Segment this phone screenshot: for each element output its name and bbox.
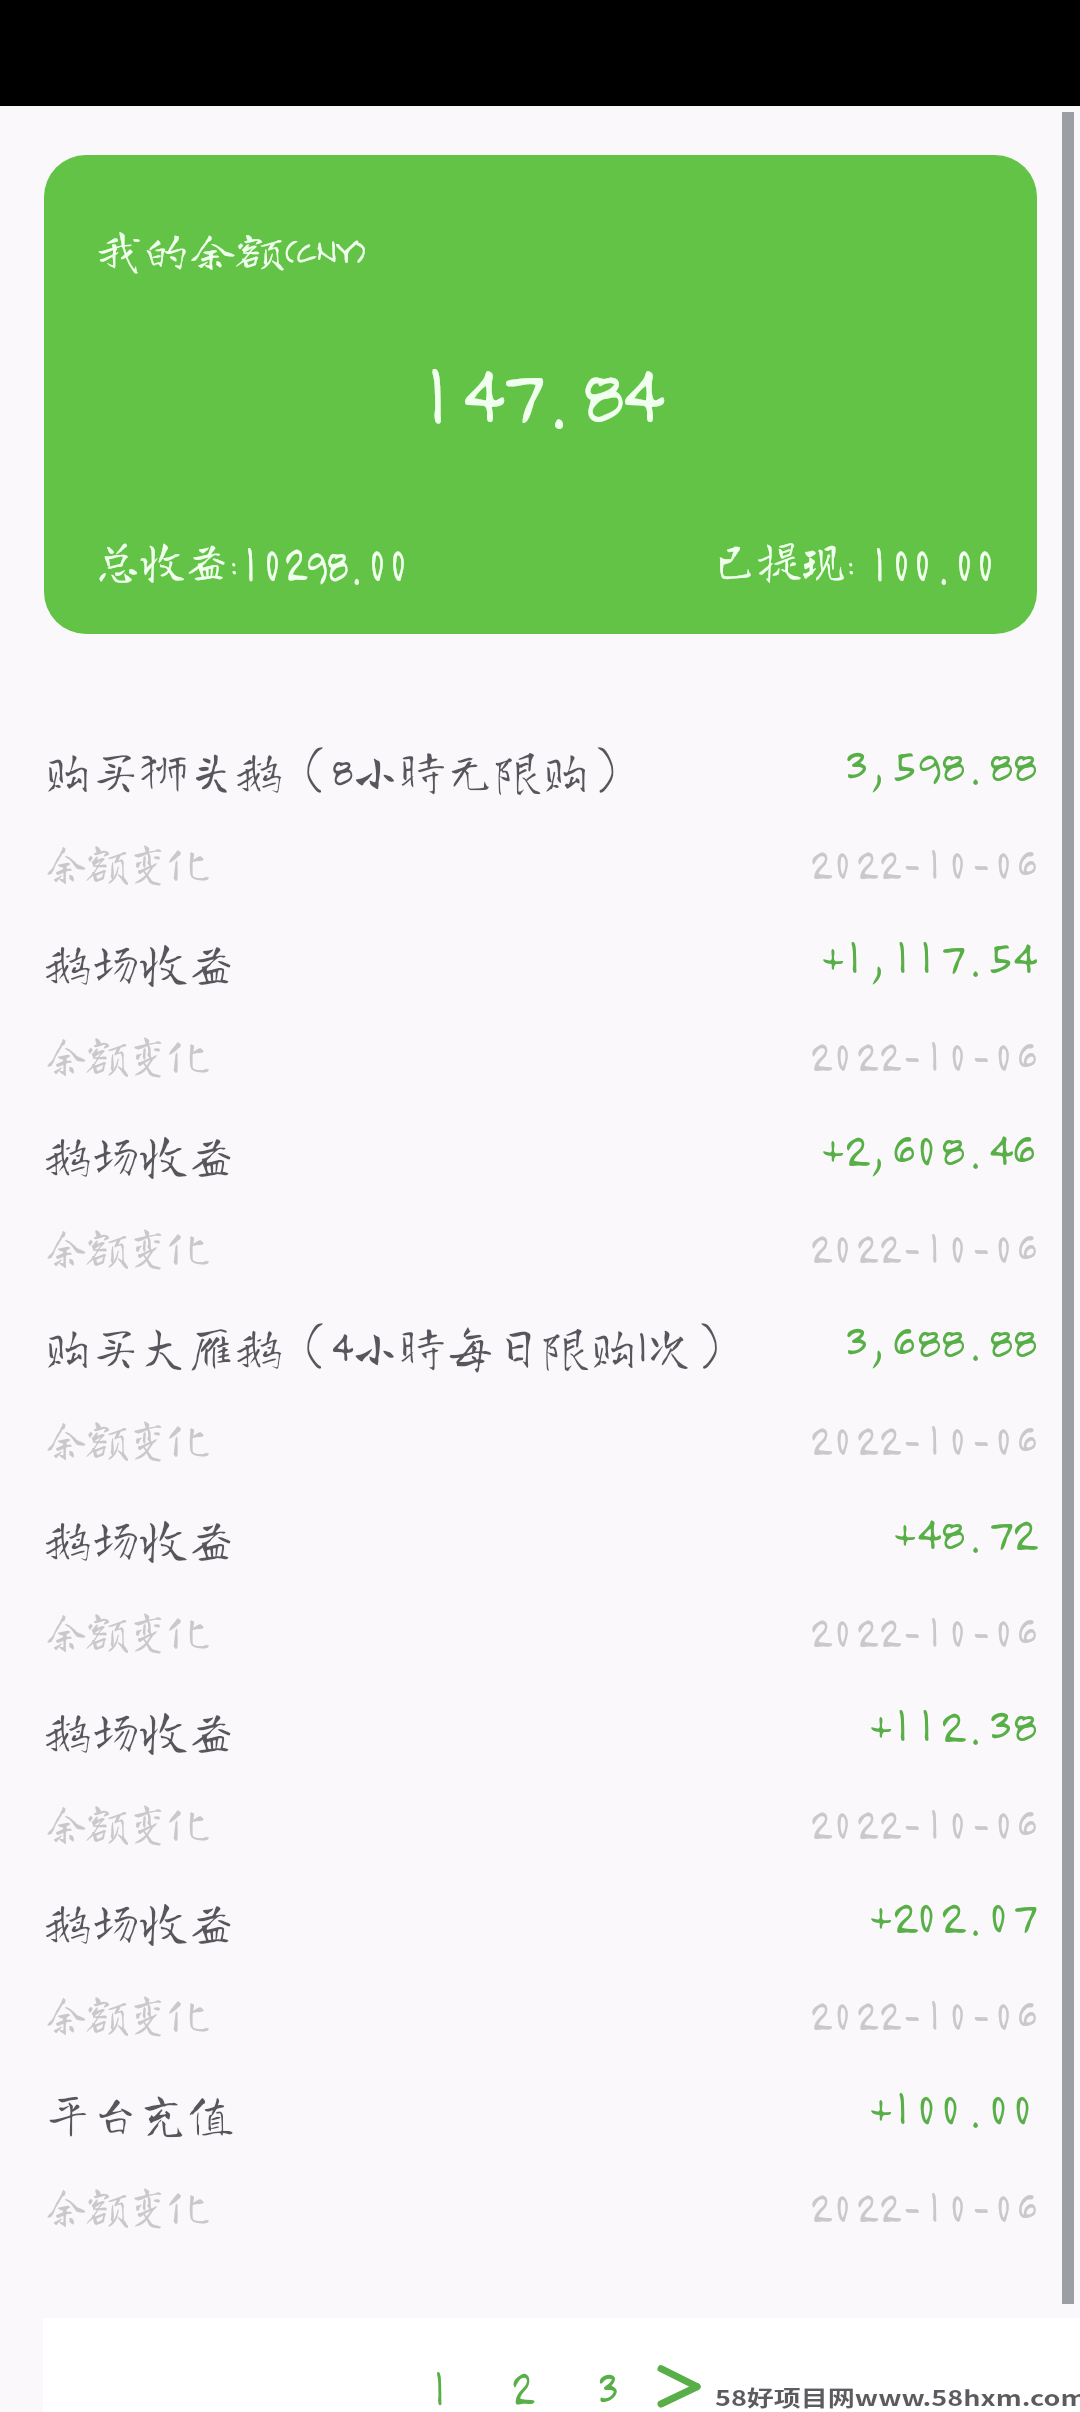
staticText: 0 xyxy=(996,836,1009,889)
staticText: 0 xyxy=(950,1796,963,1849)
staticText: 0 xyxy=(990,1887,1004,1945)
staticText: 8 xyxy=(581,340,609,443)
staticText: 0 xyxy=(914,531,927,593)
staticText: 4 xyxy=(1012,928,1030,986)
button[interactable]: 1 xyxy=(404,2352,472,2412)
staticText: 2 xyxy=(879,1604,896,1657)
staticText: - xyxy=(903,1987,919,2040)
staticText: 鹅场收益 xyxy=(44,934,235,988)
button[interactable]: 鹅场收益 xyxy=(0,1454,1080,1646)
staticText: 余额变化 xyxy=(46,1606,210,1654)
staticText: 2 xyxy=(511,2355,533,2412)
staticText: 2 xyxy=(810,836,827,889)
staticText: 2 xyxy=(879,1412,896,1465)
staticText: 0 xyxy=(950,836,963,889)
staticText: . xyxy=(970,2079,977,2137)
staticText: - xyxy=(972,1987,988,2040)
staticText: - xyxy=(972,1604,988,1657)
staticText: 8 xyxy=(1012,1312,1030,1370)
staticText: 2 xyxy=(940,1887,958,1945)
staticText: 2 xyxy=(879,1220,896,1273)
staticText: 1 xyxy=(929,1028,937,1081)
staticText: - xyxy=(972,2179,988,2232)
staticText: . xyxy=(970,736,977,794)
staticText: 1 xyxy=(929,1987,937,2040)
staticText: . xyxy=(970,1504,977,1562)
staticText: - xyxy=(903,1796,919,1849)
staticText: 3 xyxy=(844,1312,862,1370)
button[interactable]: 鹅场收益 xyxy=(0,1070,1080,1262)
staticText: 余额变化 xyxy=(46,1222,210,1270)
staticText: 6 xyxy=(1017,1028,1034,1081)
staticText: 2 xyxy=(879,2179,896,2232)
staticText: 0 xyxy=(835,1796,848,1849)
button[interactable]: 购买大雁鹅（4小时每日限购1次） xyxy=(0,1262,1080,1454)
staticText: 0 xyxy=(950,1987,963,2040)
staticText: 鹅场收益 xyxy=(44,1893,235,1947)
staticText: 1 xyxy=(929,1412,937,1465)
staticText: + xyxy=(868,1887,886,1945)
staticText: 0 xyxy=(835,2179,848,2232)
staticText: - xyxy=(972,836,988,889)
staticText: 8 xyxy=(916,1312,934,1370)
staticText: 7 xyxy=(501,340,529,443)
button[interactable]: Next page xyxy=(645,2350,713,2412)
staticText: 余额变化 xyxy=(46,1989,210,2037)
staticText: 1 xyxy=(897,1696,905,1754)
button[interactable]: 2 xyxy=(488,2352,556,2412)
staticText: 6 xyxy=(892,1312,910,1370)
staticText: 8 xyxy=(1012,736,1030,794)
staticText: 7 xyxy=(1012,1887,1030,1945)
staticText: 购买大雁鹅（4小时每日限购1次） xyxy=(44,1318,741,1372)
staticText: + xyxy=(892,1504,910,1562)
staticText: 8 xyxy=(940,1504,958,1562)
staticText: 6 xyxy=(1012,1120,1030,1178)
button[interactable]: 鹅场收益 xyxy=(0,878,1080,1070)
staticText: 8 xyxy=(988,1312,1006,1370)
staticText: 余额变化 xyxy=(46,1414,210,1462)
staticText: - xyxy=(903,1412,919,1465)
button[interactable]: 3 xyxy=(572,2352,640,2412)
staticText: 2 xyxy=(1012,1504,1030,1562)
button[interactable]: 我的余额(CNY) xyxy=(44,155,1037,634)
staticText: 2 xyxy=(856,1220,873,1273)
staticText: 0 xyxy=(390,531,403,593)
staticText: 6 xyxy=(1017,1796,1034,1849)
staticText: 2 xyxy=(892,1887,910,1945)
staticText: 2 xyxy=(879,836,896,889)
staticText: 2 xyxy=(810,1412,827,1465)
staticText: 余额变化 xyxy=(46,1030,210,1078)
staticText: - xyxy=(903,2179,919,2232)
staticText: 8 xyxy=(940,736,958,794)
staticText: 2 xyxy=(810,1220,827,1273)
staticText: 7 xyxy=(940,928,958,986)
staticText: 2 xyxy=(856,1412,873,1465)
staticText: 0 xyxy=(1014,2079,1028,2137)
staticText: 3 xyxy=(844,736,862,794)
staticText: . xyxy=(550,340,561,443)
staticText: 6 xyxy=(1017,836,1034,889)
staticText: 余额变化 xyxy=(46,1798,210,1846)
button[interactable]: 平台充值 xyxy=(0,2029,1080,2221)
staticText: 余额变化 xyxy=(46,838,210,886)
staticText: 0 xyxy=(956,531,969,593)
staticText: 2 xyxy=(940,1696,958,1754)
staticText: , xyxy=(872,1120,882,1178)
button[interactable]: 鹅场收益 xyxy=(0,1646,1080,1838)
staticText: 6 xyxy=(1017,1604,1034,1657)
button[interactable]: 购买狮头鹅（8小时无限购） xyxy=(0,686,1080,878)
staticText: 鹅场收益 xyxy=(44,1510,235,1564)
staticText: , xyxy=(872,1312,882,1370)
staticText: 6 xyxy=(1017,2179,1034,2232)
staticText: - xyxy=(972,1796,988,1849)
staticText: 0 xyxy=(996,1220,1009,1273)
staticText: - xyxy=(972,1412,988,1465)
staticText: 1 xyxy=(929,1796,937,1849)
staticText: 8 xyxy=(1012,1696,1030,1754)
staticText: 1 xyxy=(849,928,857,986)
staticText: 2 xyxy=(284,531,299,593)
button[interactable]: 鹅场收益 xyxy=(0,1837,1080,2029)
staticText: . xyxy=(970,1120,977,1178)
staticText: 8 xyxy=(940,1120,958,1178)
staticText: 4 xyxy=(916,1504,934,1562)
